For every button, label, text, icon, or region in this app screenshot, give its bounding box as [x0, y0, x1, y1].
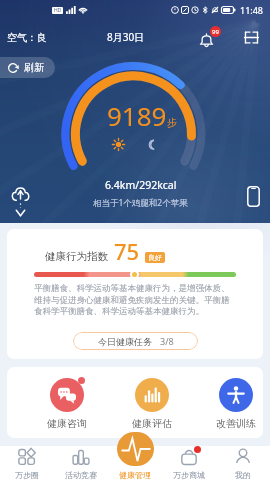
staticText: 6.4km/292kcal — [105, 178, 177, 192]
staticText: 相当于1个鸡腿和2个苹果 — [93, 197, 188, 209]
staticText: 改善训练 — [216, 417, 256, 430]
staticText: 9189 — [107, 98, 167, 133]
staticText: 万步商城 — [173, 470, 205, 480]
staticText: 健康行为指数 — [45, 250, 108, 263]
staticText: 平衡膳食、科学运动等基本健康行为，是增强体质、维持与促进身心健康和避免疾病发生的… — [34, 283, 234, 316]
button[interactable]: 万步圈 — [0, 446, 54, 480]
staticText: 8月30日 — [107, 30, 145, 44]
staticText: 健康管理 — [119, 470, 151, 480]
button[interactable]: 万步商城 — [162, 446, 216, 480]
staticText: 健康评估 — [132, 417, 172, 430]
button[interactable]: 今日健康任务 — [73, 332, 198, 350]
button[interactable]: 健康评估 — [123, 376, 181, 430]
button[interactable]: Device — [247, 186, 260, 207]
staticText: 万步圈 — [15, 470, 39, 480]
staticText: 良好 — [148, 253, 162, 262]
staticText: 步 — [167, 116, 177, 129]
button[interactable]: Notifications — [199, 26, 221, 48]
staticText: 空气：良 — [7, 31, 47, 44]
staticText: HD — [54, 7, 62, 14]
button[interactable]: 刷新 — [0, 57, 55, 78]
staticText: 75 — [114, 236, 140, 266]
staticText: 99 — [212, 28, 219, 36]
button[interactable] — [117, 432, 154, 466]
button[interactable]: 我的 — [216, 446, 270, 480]
button[interactable]: 改善训练 — [207, 376, 263, 430]
button[interactable]: Upload data — [10, 186, 31, 217]
staticText: 健康咨询 — [47, 417, 87, 430]
staticText: 刷新 — [24, 61, 44, 74]
button[interactable]: Scan — [242, 28, 260, 46]
staticText: 11:48 — [240, 4, 264, 16]
staticText: 活动竞赛 — [65, 470, 97, 480]
button[interactable]: 健康咨询 — [38, 376, 96, 430]
staticText: 3/8 — [160, 335, 174, 347]
button[interactable]: 活动竞赛 — [54, 446, 108, 480]
staticText: 今日健康任务 — [98, 336, 152, 347]
staticText: 我的 — [235, 470, 251, 480]
